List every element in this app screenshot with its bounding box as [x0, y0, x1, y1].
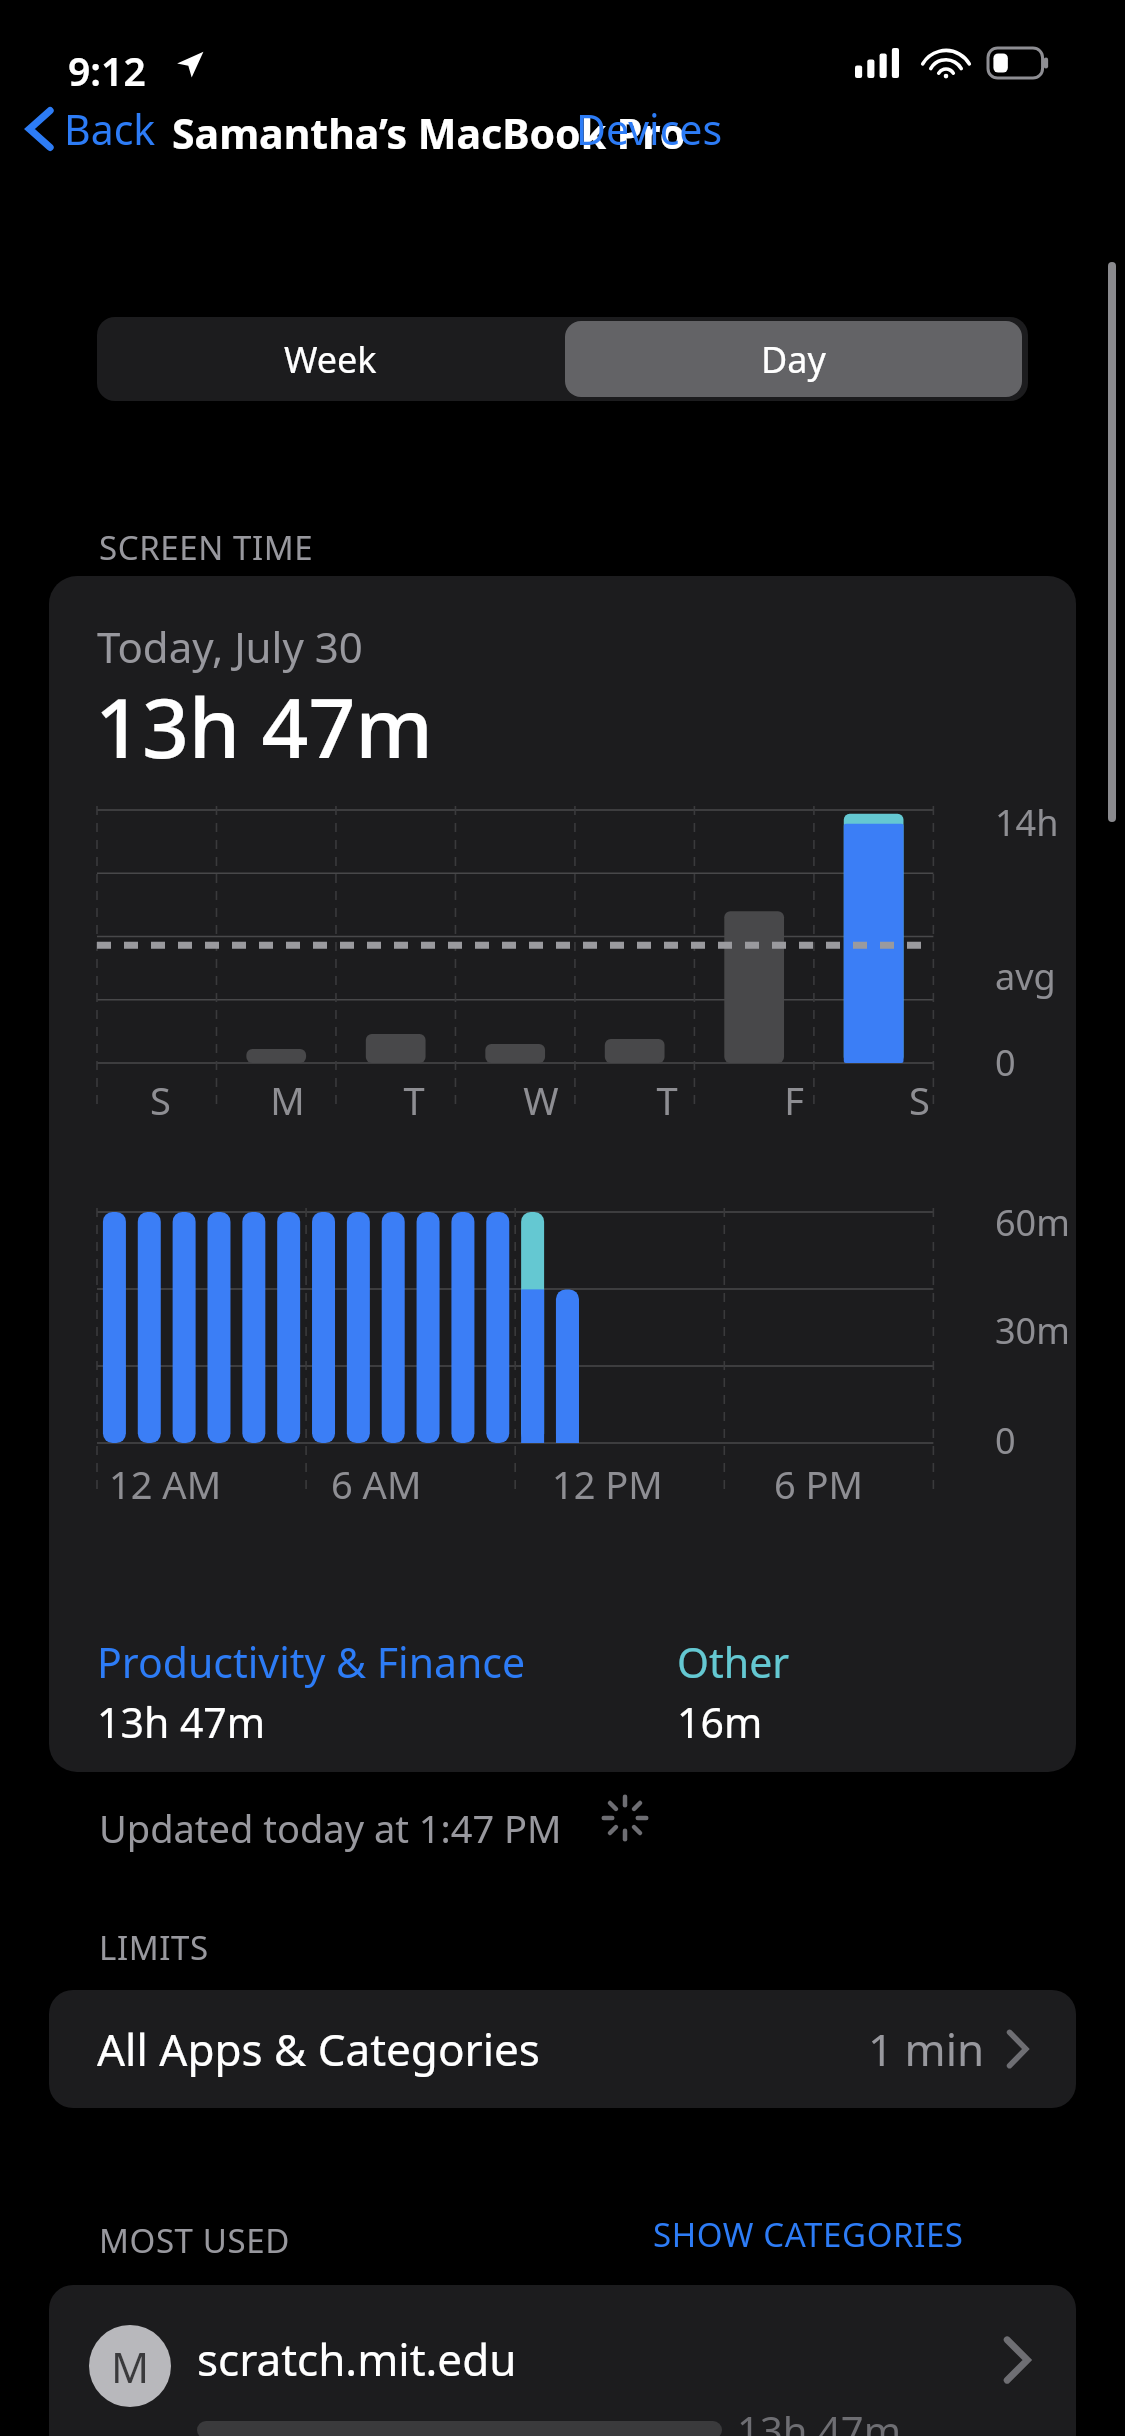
staticText: All Apps & Categories: [97, 2019, 540, 2079]
staticText: Updated today at 1:47 PM: [99, 1802, 562, 1854]
staticText: Devices: [576, 101, 723, 157]
staticText: 12 AM: [109, 1458, 222, 1510]
staticText: Productivity & Finance: [97, 1634, 526, 1690]
staticText: Back: [64, 101, 156, 157]
staticText: Other: [677, 1634, 790, 1690]
button[interactable]: SHOW CATEGORIES: [645, 2200, 972, 2268]
button[interactable]: Back: [20, 96, 164, 162]
staticText: 13h 47m: [95, 670, 434, 782]
staticText: F: [784, 1074, 804, 1126]
button[interactable]: M: [49, 2285, 1076, 2436]
button[interactable]: Today, July 30: [49, 576, 1076, 1772]
staticText: 30m: [995, 1306, 1070, 1355]
staticText: avg: [995, 952, 1056, 1001]
button[interactable]: All Apps & Categories: [49, 1990, 1076, 2108]
staticText: 0: [995, 1416, 1016, 1465]
staticText: scratch.mit.edu: [197, 2329, 517, 2389]
staticText: T: [656, 1074, 678, 1126]
staticText: 0: [995, 1038, 1016, 1087]
staticText: Day: [761, 335, 826, 384]
staticText: 6 PM: [774, 1458, 864, 1510]
staticText: 14h: [995, 798, 1059, 847]
staticText: 12 PM: [552, 1458, 663, 1510]
staticText: LIMITS: [99, 1925, 209, 1970]
staticText: W: [523, 1074, 559, 1126]
button[interactable]: Week: [103, 321, 558, 397]
staticText: Samantha’s MacBook Pro: [172, 105, 686, 161]
staticText: 13h 47m: [737, 2403, 902, 2436]
staticText: 9:12: [68, 44, 146, 97]
staticText: 13h 47m: [97, 1694, 266, 1750]
staticText: SCREEN TIME: [99, 525, 314, 570]
staticText: T: [403, 1074, 425, 1126]
staticText: M: [111, 2338, 150, 2395]
button[interactable]: Day: [565, 321, 1022, 397]
staticText: 6 AM: [331, 1458, 422, 1510]
staticText: S: [150, 1074, 171, 1126]
staticText: 1 min: [868, 2019, 985, 2079]
staticText: S: [909, 1074, 930, 1126]
staticText: 16m: [677, 1694, 763, 1750]
staticText: Week: [284, 335, 377, 384]
staticText: 60m: [995, 1198, 1070, 1247]
staticText: Today, July 30: [97, 618, 363, 675]
staticText: MOST USED: [99, 2218, 290, 2263]
staticText: SHOW CATEGORIES: [653, 2212, 964, 2257]
button[interactable]: Devices: [566, 96, 733, 162]
staticText: M: [270, 1074, 305, 1126]
